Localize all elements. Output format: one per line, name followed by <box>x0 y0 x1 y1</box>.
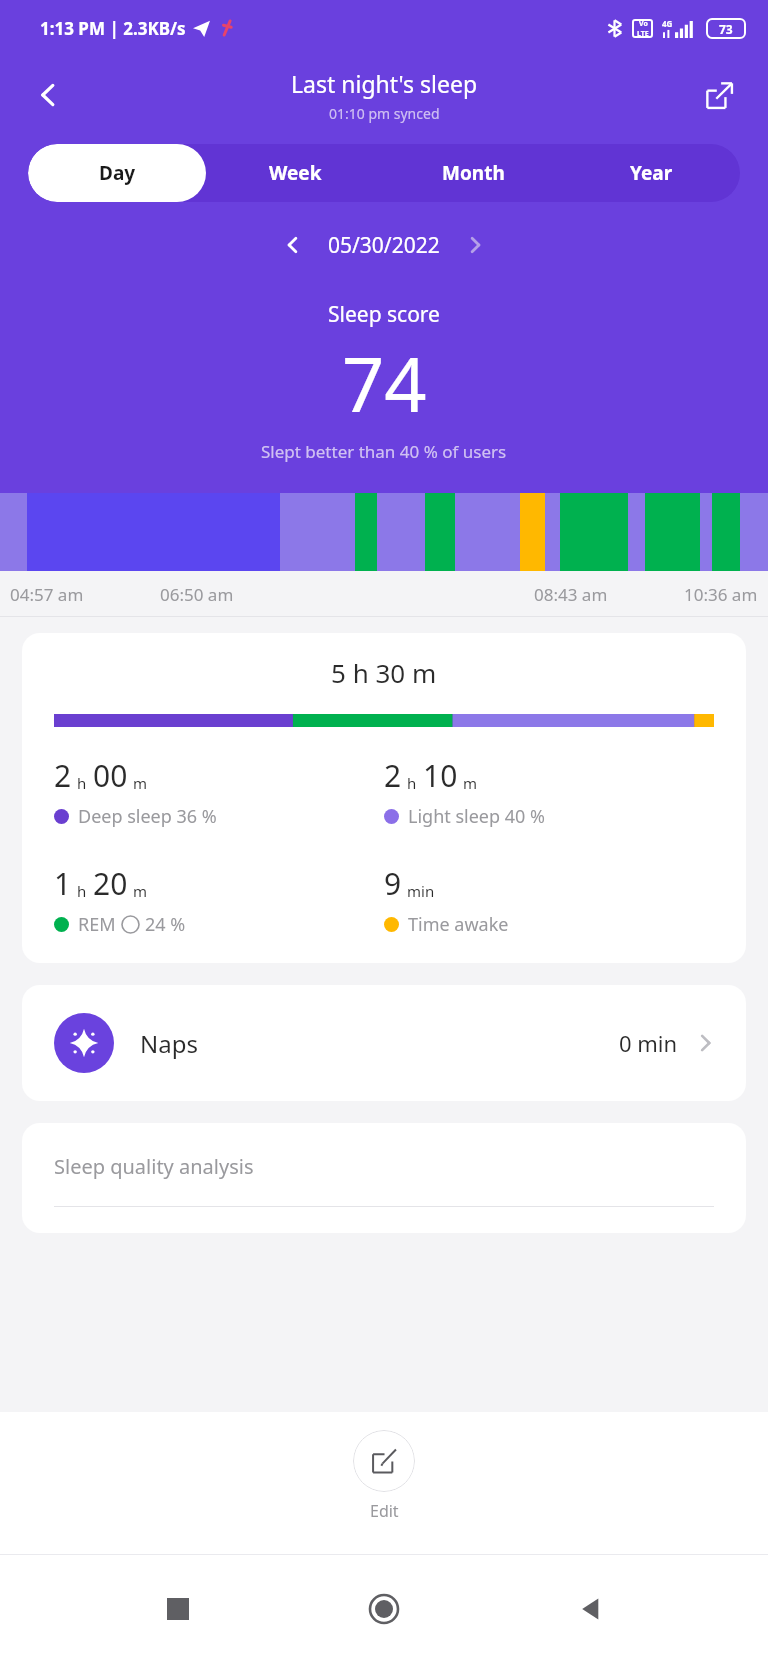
staticText: Light sleep 40 % <box>408 804 545 829</box>
staticText: Vo <box>639 19 648 29</box>
staticText: 00 <box>93 755 128 796</box>
staticText: Naps <box>140 1027 198 1060</box>
staticText: Time awake <box>408 912 509 937</box>
staticText: Edit <box>370 1500 399 1522</box>
staticText: 01:10 pm synced <box>329 104 440 123</box>
staticText: Last night's sleep <box>291 68 478 99</box>
staticText: h <box>77 773 87 793</box>
button[interactable]: Week <box>206 144 384 202</box>
button[interactable]: Previous day <box>272 224 314 266</box>
button[interactable]: Naps <box>22 985 746 1101</box>
staticText: 20 <box>93 863 128 904</box>
staticText: 04:57 am <box>10 583 84 606</box>
button[interactable]: Back <box>26 72 72 118</box>
staticText: 9 <box>384 863 402 904</box>
staticText: REM <box>78 912 116 937</box>
staticText: m <box>463 773 478 793</box>
staticText: 10:36 am <box>684 583 758 606</box>
staticText: min <box>407 881 435 901</box>
staticText: LTE <box>637 29 649 38</box>
staticText: Year <box>630 160 673 186</box>
staticText: 2 <box>54 755 72 796</box>
staticText: m <box>133 773 148 793</box>
staticText: 24 % <box>145 912 186 937</box>
staticText: Sleep quality analysis <box>54 1153 254 1180</box>
button[interactable]: Home <box>356 1581 412 1637</box>
staticText: Week <box>269 160 322 186</box>
staticText: 2 <box>384 755 402 796</box>
staticText: 74 <box>342 333 427 434</box>
button[interactable]: Edit <box>353 1430 415 1522</box>
staticText: Month <box>442 160 505 186</box>
button[interactable]: Share <box>696 72 742 118</box>
button[interactable]: Month <box>384 144 562 202</box>
button[interactable]: Year <box>562 144 740 202</box>
button[interactable]: Sleep quality analysis <box>22 1123 746 1233</box>
button[interactable]: Back <box>562 1581 618 1637</box>
staticText: 08:43 am <box>534 583 608 606</box>
staticText: 0 min <box>619 1028 678 1058</box>
staticText: 10 <box>423 755 458 796</box>
button[interactable]: Day <box>28 144 206 202</box>
button[interactable]: Recents <box>150 1581 206 1637</box>
staticText: h <box>407 773 417 793</box>
staticText: Deep sleep 36 % <box>78 804 217 829</box>
staticText: m <box>133 881 148 901</box>
staticText: Day <box>99 160 136 186</box>
button[interactable]: Next day <box>454 224 496 266</box>
staticText: 05/30/2022 <box>328 231 440 260</box>
staticText: 5 h 30 m <box>331 655 437 690</box>
staticText: 73 <box>719 21 733 37</box>
staticText: 4G <box>662 18 673 29</box>
staticText: h <box>77 881 87 901</box>
staticText: Sleep score <box>328 300 440 329</box>
staticText: 06:50 am <box>160 583 234 606</box>
staticText: 1 <box>54 863 72 904</box>
staticText: Slept better than 40 % of users <box>261 440 507 463</box>
staticText: 1:13 PM | 2.3KB/s <box>40 17 186 40</box>
